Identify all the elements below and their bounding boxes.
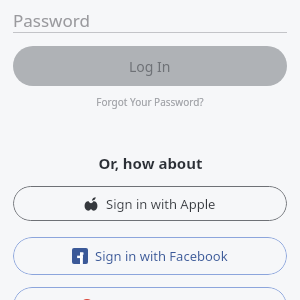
staticText: Log In	[129, 57, 171, 76]
button[interactable]: Google	[13, 287, 287, 300]
button[interactable]: Sign in with Apple	[13, 186, 287, 221]
staticText: Sign in with Facebook	[95, 247, 228, 265]
staticText: Sign in with Apple	[106, 195, 216, 213]
button[interactable]: Sign in with Facebook	[13, 237, 287, 275]
staticText: Password	[13, 9, 90, 32]
staticText: Forgot Your Password?	[96, 95, 204, 109]
other: Google	[80, 299, 94, 300]
button[interactable]: Password	[13, 6, 287, 34]
button[interactable]: Forgot Your Password?	[0, 93, 300, 111]
staticText: Or, how about	[98, 153, 203, 173]
button[interactable]: Log In	[13, 46, 287, 86]
